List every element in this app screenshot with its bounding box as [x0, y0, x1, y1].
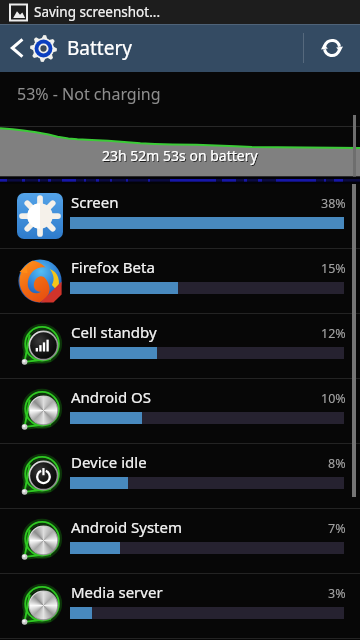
button[interactable]: Refresh	[304, 24, 360, 72]
staticText: 38%	[321, 195, 346, 212]
button[interactable]: Android System	[0, 509, 360, 574]
staticText: Media server	[71, 582, 163, 602]
button[interactable]: Media server	[0, 574, 360, 639]
staticText: Battery	[67, 35, 132, 61]
staticText: Android OS	[71, 387, 151, 407]
staticText: 7%	[328, 520, 346, 537]
button[interactable]: Navigate up	[0, 24, 61, 72]
staticText: 12%	[321, 325, 346, 342]
button[interactable]: Firefox Beta	[0, 249, 360, 314]
staticText: 15%	[321, 260, 346, 277]
staticText: 23h 52m 53s on battery	[103, 147, 259, 166]
staticText: 53% - Not charging	[17, 83, 161, 105]
button[interactable]: Android OS	[0, 379, 360, 444]
staticText: Android System	[71, 517, 183, 537]
button[interactable]: Cell standby	[0, 314, 360, 379]
staticText: Firefox Beta	[71, 257, 155, 277]
staticText: 8%	[328, 455, 346, 472]
staticText: 10%	[321, 390, 346, 407]
button[interactable]: Device idle	[0, 444, 360, 509]
button[interactable]: Screen	[0, 184, 360, 249]
staticText: Screen	[71, 192, 119, 212]
staticText: 3%	[328, 585, 346, 602]
staticText: Saving screenshot...	[34, 3, 161, 21]
staticText: 23h 52m 53s on battery	[102, 146, 258, 165]
staticText: Device idle	[71, 452, 147, 472]
staticText: Cell standby	[71, 322, 157, 342]
